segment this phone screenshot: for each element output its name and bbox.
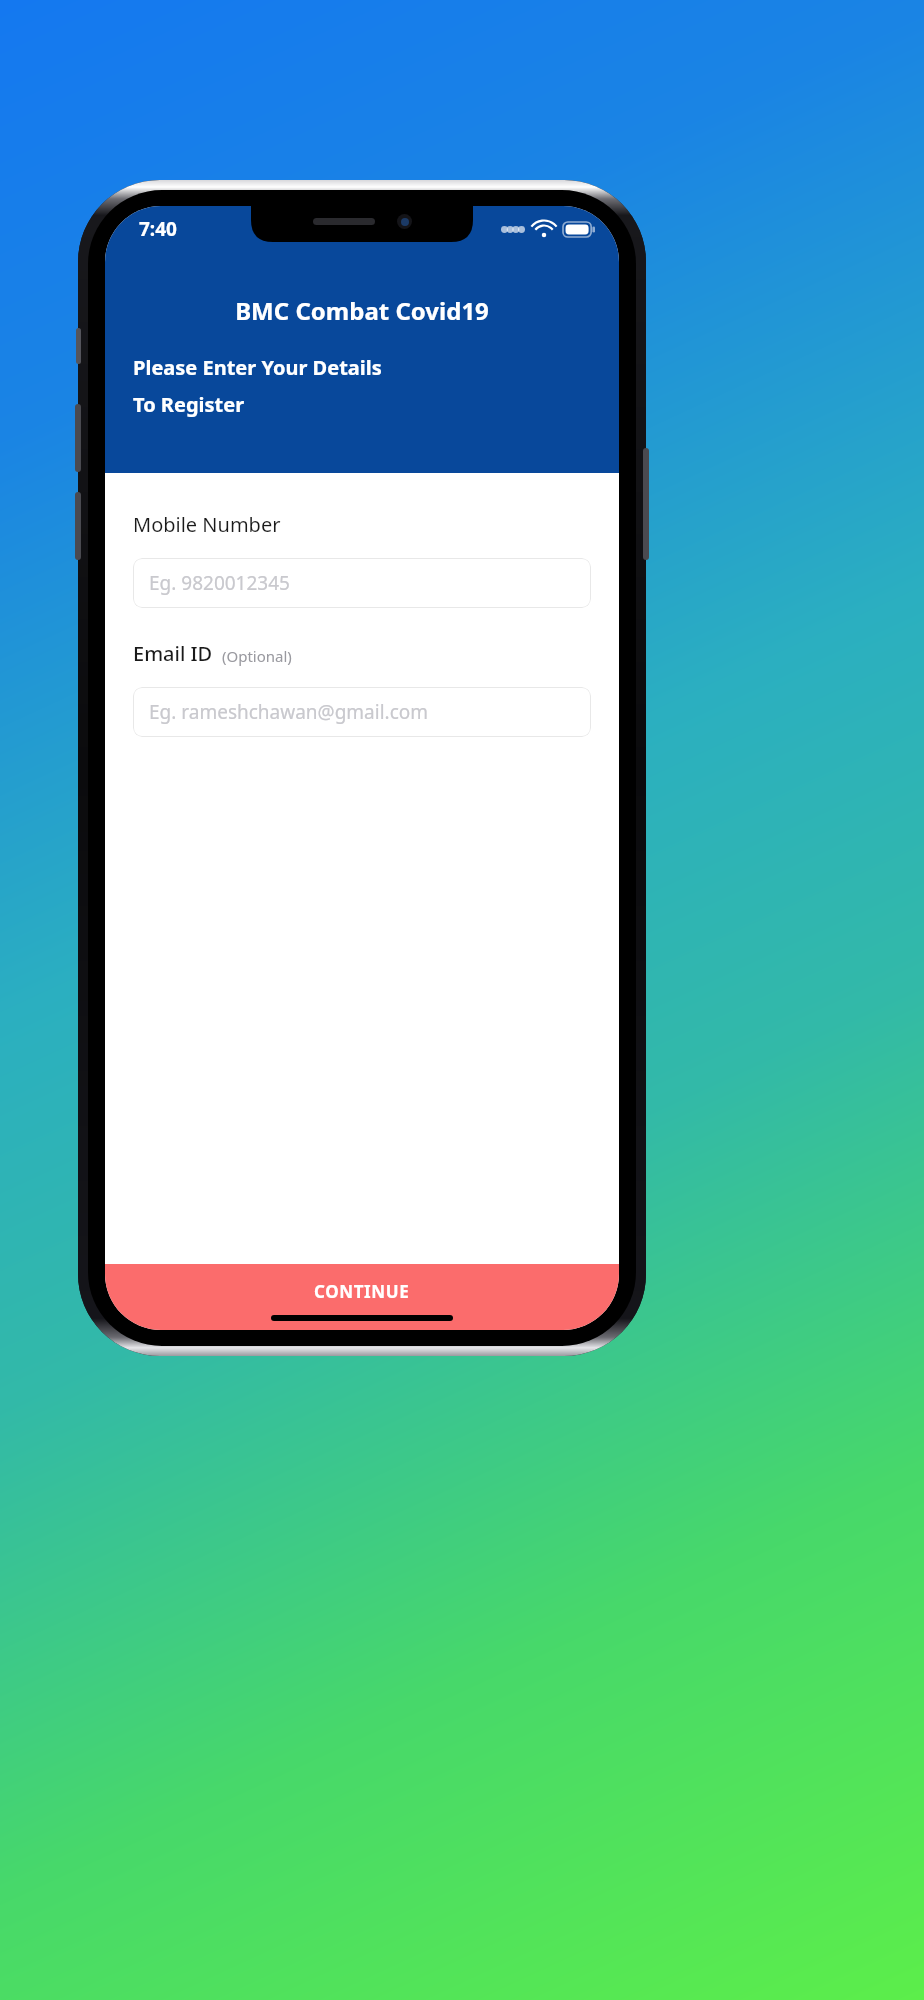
staticText: BMC Combat Covid19	[235, 294, 489, 327]
staticText: Eg. rameshchawan@gmail.com	[149, 699, 429, 725]
staticText: 7:40	[139, 216, 177, 242]
button[interactable]: CONTINUE	[105, 1264, 619, 1330]
staticText: Please Enter Your Details	[133, 354, 382, 381]
button[interactable]: Eg. 9820012345	[133, 558, 591, 608]
other: Cellular signal	[501, 225, 525, 234]
staticText: Mobile Number	[133, 511, 281, 538]
staticText: To Register	[133, 391, 245, 418]
staticText: Eg. 9820012345	[149, 570, 290, 596]
button[interactable]: Eg. rameshchawan@gmail.com	[133, 687, 591, 737]
other: Battery	[563, 222, 595, 237]
staticText: Email ID	[133, 640, 213, 667]
other: Wi-Fi	[533, 221, 555, 237]
staticText: CONTINUE	[314, 1280, 410, 1303]
staticText: (Optional)	[222, 646, 292, 666]
